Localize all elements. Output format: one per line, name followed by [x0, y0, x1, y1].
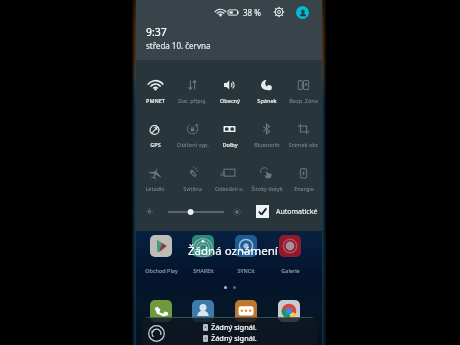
button[interactable]: Chrome	[278, 300, 300, 322]
staticText: SYNCit	[237, 267, 255, 274]
staticText: Dat. přípoj.	[178, 97, 207, 104]
button[interactable]: Obecný	[211, 60, 248, 104]
staticText: Obecný	[220, 97, 240, 104]
staticText: středa 10. června	[146, 40, 211, 51]
button[interactable]: User profile	[296, 6, 309, 19]
staticText: Galerie	[281, 267, 300, 274]
button[interactable]: SYNCit	[225, 235, 267, 274]
button[interactable]: Otáčení vyp.	[174, 104, 211, 148]
button[interactable]: Letadlo	[136, 148, 174, 192]
button[interactable]: Svítilna	[174, 148, 211, 192]
staticText: Letadlo	[145, 185, 165, 192]
staticText: Odeslání o.	[215, 185, 244, 192]
staticText: Svítilna	[183, 185, 202, 192]
staticText: PMNET	[146, 97, 165, 104]
staticText: 38 %	[243, 7, 261, 18]
button[interactable]: Phone	[150, 300, 172, 322]
staticText: Otáčení vyp.	[177, 141, 209, 148]
staticText: Žádný signál.	[211, 333, 257, 343]
button[interactable]: Bluetooth	[248, 104, 285, 148]
button[interactable]: Undo	[148, 325, 165, 342]
staticText: Žádná oznámení	[188, 243, 278, 259]
staticText: Obchod Play	[145, 267, 178, 274]
button[interactable]: Dolby	[211, 104, 248, 148]
button[interactable]: Galerie	[269, 235, 311, 274]
staticText: Energie	[294, 185, 314, 192]
staticText: Automatické	[276, 207, 318, 217]
button[interactable]: Automatic brightness	[256, 205, 269, 218]
staticText: Bezp. Zóna	[289, 97, 318, 104]
button[interactable]: Dat. přípoj.	[174, 60, 211, 104]
staticText: Bluetooth	[254, 141, 280, 148]
button[interactable]: GPS	[136, 104, 174, 148]
staticText: Široký dotyk	[251, 185, 283, 192]
button[interactable]: Snímek obr.	[285, 104, 322, 148]
button[interactable]: PMNET	[136, 60, 174, 104]
button[interactable]: Odeslání o.	[211, 148, 248, 192]
button[interactable]: Brightness	[166, 206, 226, 218]
staticText: Dolby	[222, 141, 238, 148]
staticText: GPS	[150, 141, 161, 148]
staticText: 9:37	[146, 25, 167, 39]
button[interactable]: Obchod Play	[140, 235, 182, 274]
button[interactable]: Messages	[235, 300, 257, 322]
staticText: Snímek obr.	[288, 141, 319, 148]
staticText: SHAREit	[193, 267, 214, 274]
staticText: Žádný signál.	[211, 322, 257, 332]
button[interactable]: SHAREit	[182, 235, 224, 274]
button[interactable]: Široký dotyk	[248, 148, 285, 192]
staticText: Spánek	[257, 97, 277, 104]
button[interactable]: Energie	[285, 148, 322, 192]
button[interactable]: Settings	[273, 6, 285, 18]
button[interactable]: Contacts	[192, 300, 214, 322]
button[interactable]: Spánek	[248, 60, 285, 104]
button[interactable]: Bezp. Zóna	[285, 60, 322, 104]
